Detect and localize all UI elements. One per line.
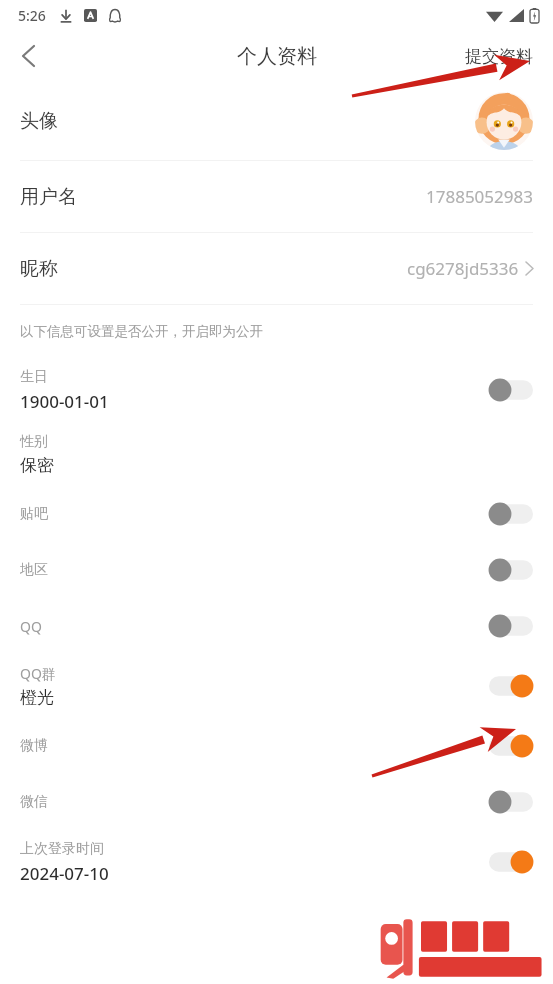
button[interactable]: 上次登录时间 — [0, 830, 553, 894]
staticText: 17885052983 — [426, 185, 533, 208]
button[interactable]: Toggle on — [489, 675, 533, 697]
button[interactable]: Toggle on — [489, 735, 533, 757]
staticText: 头像 — [20, 109, 58, 133]
staticText: 以下信息可设置是否公开，开启即为公开 — [20, 323, 263, 340]
staticText: 微博 — [20, 737, 48, 755]
button[interactable]: Toggle off — [489, 615, 533, 637]
staticText: 2024-07-10 — [20, 862, 109, 885]
staticText: QQ — [20, 617, 42, 636]
staticText: 上次登录时间 — [20, 840, 104, 858]
button[interactable]: Toggle off — [489, 791, 533, 813]
button[interactable]: 微信 — [0, 774, 553, 830]
staticText: 生日 — [20, 368, 48, 386]
staticText: 地区 — [20, 561, 48, 579]
button[interactable]: 贴吧 — [0, 486, 553, 542]
staticText: 1900-01-01 — [20, 390, 109, 413]
staticText: 个人资料 — [237, 44, 317, 69]
staticText: cg6278jd5336 — [407, 257, 519, 280]
button[interactable]: 生日 — [0, 358, 553, 422]
button[interactable]: 地区 — [0, 542, 553, 598]
button[interactable]: Back — [0, 30, 56, 82]
button[interactable]: Toggle off — [489, 559, 533, 581]
staticText: 提交资料 — [465, 46, 533, 67]
button[interactable]: QQ群 — [0, 654, 553, 718]
button[interactable]: 提交资料 — [445, 38, 553, 75]
staticText: 用户名 — [20, 185, 77, 209]
button[interactable]: QQ — [0, 598, 553, 654]
staticText: 贴吧 — [20, 505, 48, 523]
staticText: QQ群 — [20, 664, 56, 683]
button[interactable]: Toggle off — [489, 379, 533, 401]
button[interactable]: 微博 — [0, 718, 553, 774]
button[interactable]: 用户名 — [0, 161, 553, 232]
button[interactable]: 性别 — [0, 422, 553, 486]
button[interactable]: Toggle on — [489, 851, 533, 873]
button[interactable]: 头像 — [0, 82, 553, 160]
staticText: 性别 — [20, 433, 48, 451]
staticText: 5:26 — [18, 6, 46, 25]
staticText: 橙光 — [20, 687, 54, 708]
staticText: 昵称 — [20, 257, 58, 281]
button[interactable]: 昵称 — [0, 233, 553, 304]
button[interactable]: Toggle off — [489, 503, 533, 525]
staticText: 保密 — [20, 455, 54, 476]
staticText: 微信 — [20, 793, 48, 811]
